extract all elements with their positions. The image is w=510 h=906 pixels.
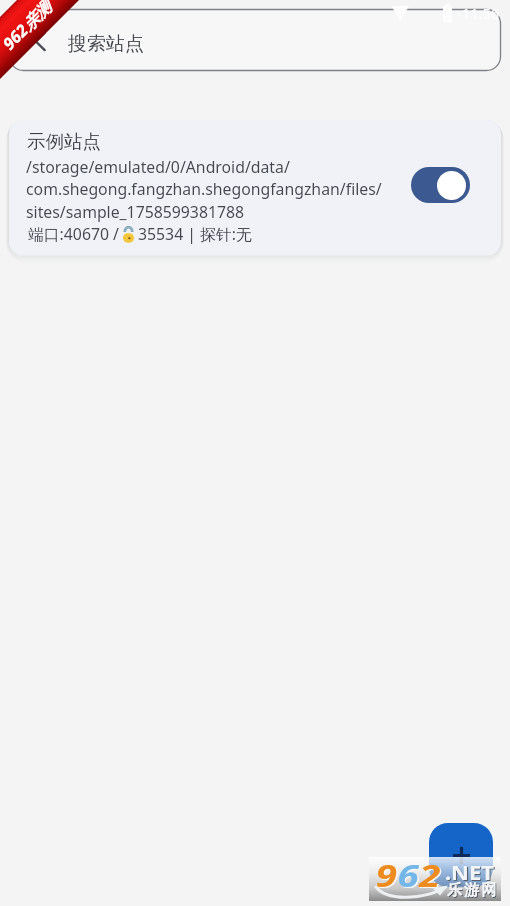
button[interactable]: Add site [429, 823, 493, 887]
staticText: com.shegong.fangzhan.shegongfangzhan/fil… [26, 178, 382, 200]
staticText: 2 [419, 855, 441, 896]
staticText: 11:56 [462, 3, 500, 23]
staticText: 6 [397, 855, 419, 896]
button[interactable]: 示例站点 [9, 120, 501, 255]
button[interactable]: Back [9, 9, 501, 71]
staticText: 6 [399, 856, 421, 897]
staticText: 962亲测 [0, 0, 57, 54]
staticText: .NET [445, 859, 494, 886]
button[interactable]: Toggle site on [411, 167, 470, 203]
staticText: .NET [446, 860, 495, 887]
staticText: 35534 | 探针:无 [138, 223, 252, 245]
staticText: 乐游网 [447, 881, 499, 900]
staticText: /storage/emulated/0/Android/data/ [26, 156, 290, 178]
staticText: 2 [420, 856, 442, 897]
staticText: 端口:40670 / [28, 223, 119, 245]
staticText: 乐游网 [448, 882, 500, 901]
button[interactable]: Back [31, 32, 50, 51]
staticText: 9 [377, 856, 399, 897]
staticText: 示例站点 [27, 130, 101, 153]
staticText: 搜索站点 [68, 32, 144, 56]
staticText: 9 [376, 855, 397, 896]
staticText: sites/sample_1758599381788 [26, 201, 245, 223]
